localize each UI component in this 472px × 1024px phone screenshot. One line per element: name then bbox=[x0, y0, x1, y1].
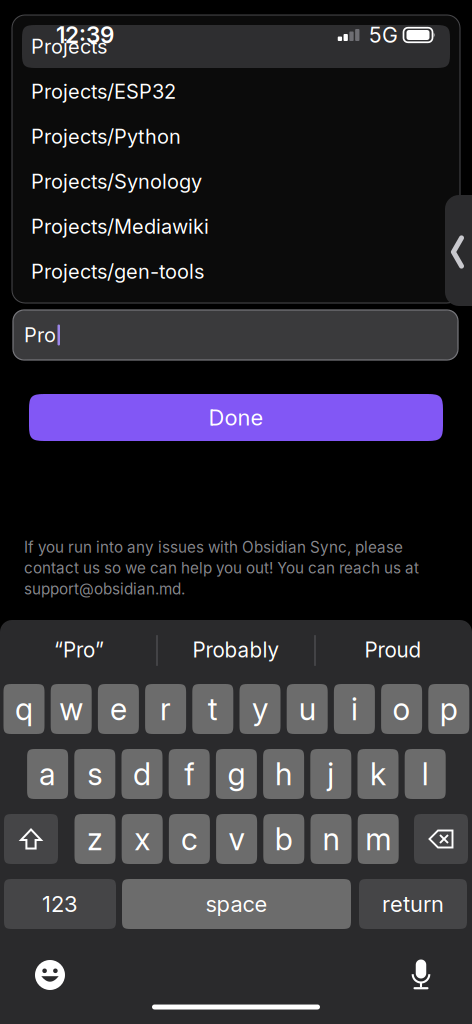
button[interactable]: k bbox=[357, 749, 398, 799]
staticText: o bbox=[393, 690, 411, 727]
button[interactable]: g bbox=[216, 749, 257, 799]
staticText: Projects/ESP32 bbox=[31, 79, 176, 104]
button[interactable]: Probably bbox=[158, 627, 313, 673]
button[interactable]: Projects/ESP32 bbox=[22, 70, 450, 113]
staticText: j bbox=[327, 755, 334, 792]
button[interactable]: Projects/Python bbox=[22, 115, 450, 158]
button[interactable]: Dictation bbox=[399, 953, 443, 997]
staticText: e bbox=[110, 690, 127, 727]
button[interactable]: i bbox=[334, 684, 375, 734]
staticText: r bbox=[160, 690, 171, 727]
button[interactable]: Projects/gen-tools bbox=[22, 250, 450, 293]
button[interactable]: n bbox=[310, 814, 351, 864]
button[interactable]: t bbox=[192, 684, 233, 734]
staticText: x bbox=[134, 820, 150, 857]
button[interactable]: b bbox=[263, 814, 304, 864]
staticText: c bbox=[181, 820, 198, 857]
staticText: Proud bbox=[364, 637, 421, 662]
button[interactable]: Shift bbox=[4, 814, 58, 864]
button[interactable]: q bbox=[3, 684, 44, 734]
staticText: Projects/Python bbox=[31, 124, 181, 149]
staticText: Probably bbox=[192, 637, 279, 662]
button[interactable]: Numbers bbox=[4, 879, 116, 929]
staticText: w bbox=[59, 690, 83, 727]
staticText: t bbox=[208, 690, 218, 727]
button[interactable]: c bbox=[169, 814, 210, 864]
staticText: b bbox=[275, 820, 293, 857]
button[interactable]: Proud bbox=[315, 627, 470, 673]
button[interactable]: “Pro” bbox=[1, 627, 156, 673]
staticText: m bbox=[365, 820, 391, 857]
button[interactable]: Delete bbox=[414, 814, 468, 864]
button[interactable]: w bbox=[51, 684, 92, 734]
staticText: v bbox=[229, 820, 245, 857]
button[interactable]: Done bbox=[29, 394, 443, 441]
button[interactable]: s bbox=[74, 749, 115, 799]
staticText: 12:39 bbox=[56, 21, 114, 49]
button[interactable]: h bbox=[263, 749, 304, 799]
button[interactable]: f bbox=[169, 749, 210, 799]
staticText: space bbox=[205, 891, 267, 917]
staticText: Pro bbox=[24, 323, 56, 347]
button[interactable]: u bbox=[287, 684, 328, 734]
button[interactable]: e bbox=[98, 684, 139, 734]
staticText: 5G bbox=[369, 22, 398, 48]
staticText: u bbox=[299, 690, 316, 727]
staticText: i bbox=[351, 690, 358, 727]
button[interactable]: r bbox=[145, 684, 186, 734]
button[interactable]: d bbox=[121, 749, 162, 799]
staticText: Projects/Mediawiki bbox=[31, 214, 209, 239]
button[interactable]: z bbox=[74, 814, 115, 864]
staticText: d bbox=[133, 755, 151, 792]
staticText: return bbox=[382, 891, 444, 917]
button[interactable]: y bbox=[239, 684, 280, 734]
staticText: k bbox=[370, 755, 386, 792]
staticText: Projects/Synology bbox=[31, 169, 202, 194]
button[interactable]: p bbox=[428, 684, 469, 734]
staticText: g bbox=[227, 755, 245, 792]
staticText: Projects/gen-tools bbox=[31, 259, 204, 284]
staticText: f bbox=[184, 755, 194, 792]
staticText: p bbox=[440, 690, 458, 727]
button[interactable]: Projects bbox=[22, 25, 450, 68]
button[interactable]: space bbox=[122, 879, 351, 929]
button[interactable]: a bbox=[27, 749, 68, 799]
staticText: y bbox=[252, 690, 268, 727]
button[interactable]: Show sidebar bbox=[445, 195, 472, 306]
staticText: “Pro” bbox=[54, 637, 104, 662]
button[interactable]: Emoji bbox=[28, 953, 72, 997]
staticText: Projects bbox=[31, 34, 107, 59]
button[interactable]: j bbox=[310, 749, 351, 799]
button[interactable]: o bbox=[381, 684, 422, 734]
button[interactable]: l bbox=[405, 749, 446, 799]
staticText: n bbox=[322, 820, 339, 857]
staticText: s bbox=[87, 755, 102, 792]
button[interactable]: x bbox=[122, 814, 163, 864]
staticText: q bbox=[15, 690, 33, 727]
button[interactable]: m bbox=[358, 814, 399, 864]
button[interactable]: return bbox=[359, 879, 467, 929]
staticText: h bbox=[275, 755, 292, 792]
staticText: l bbox=[422, 755, 429, 792]
staticText: a bbox=[39, 755, 56, 792]
staticText: If you run into any issues with Obsidian… bbox=[24, 538, 419, 598]
button[interactable]: Projects/Mediawiki bbox=[22, 205, 450, 248]
staticText: z bbox=[87, 820, 103, 857]
staticText: 123 bbox=[42, 891, 78, 917]
button[interactable]: v bbox=[216, 814, 257, 864]
button[interactable]: Projects/Synology bbox=[22, 160, 450, 203]
staticText: Done bbox=[208, 404, 263, 431]
